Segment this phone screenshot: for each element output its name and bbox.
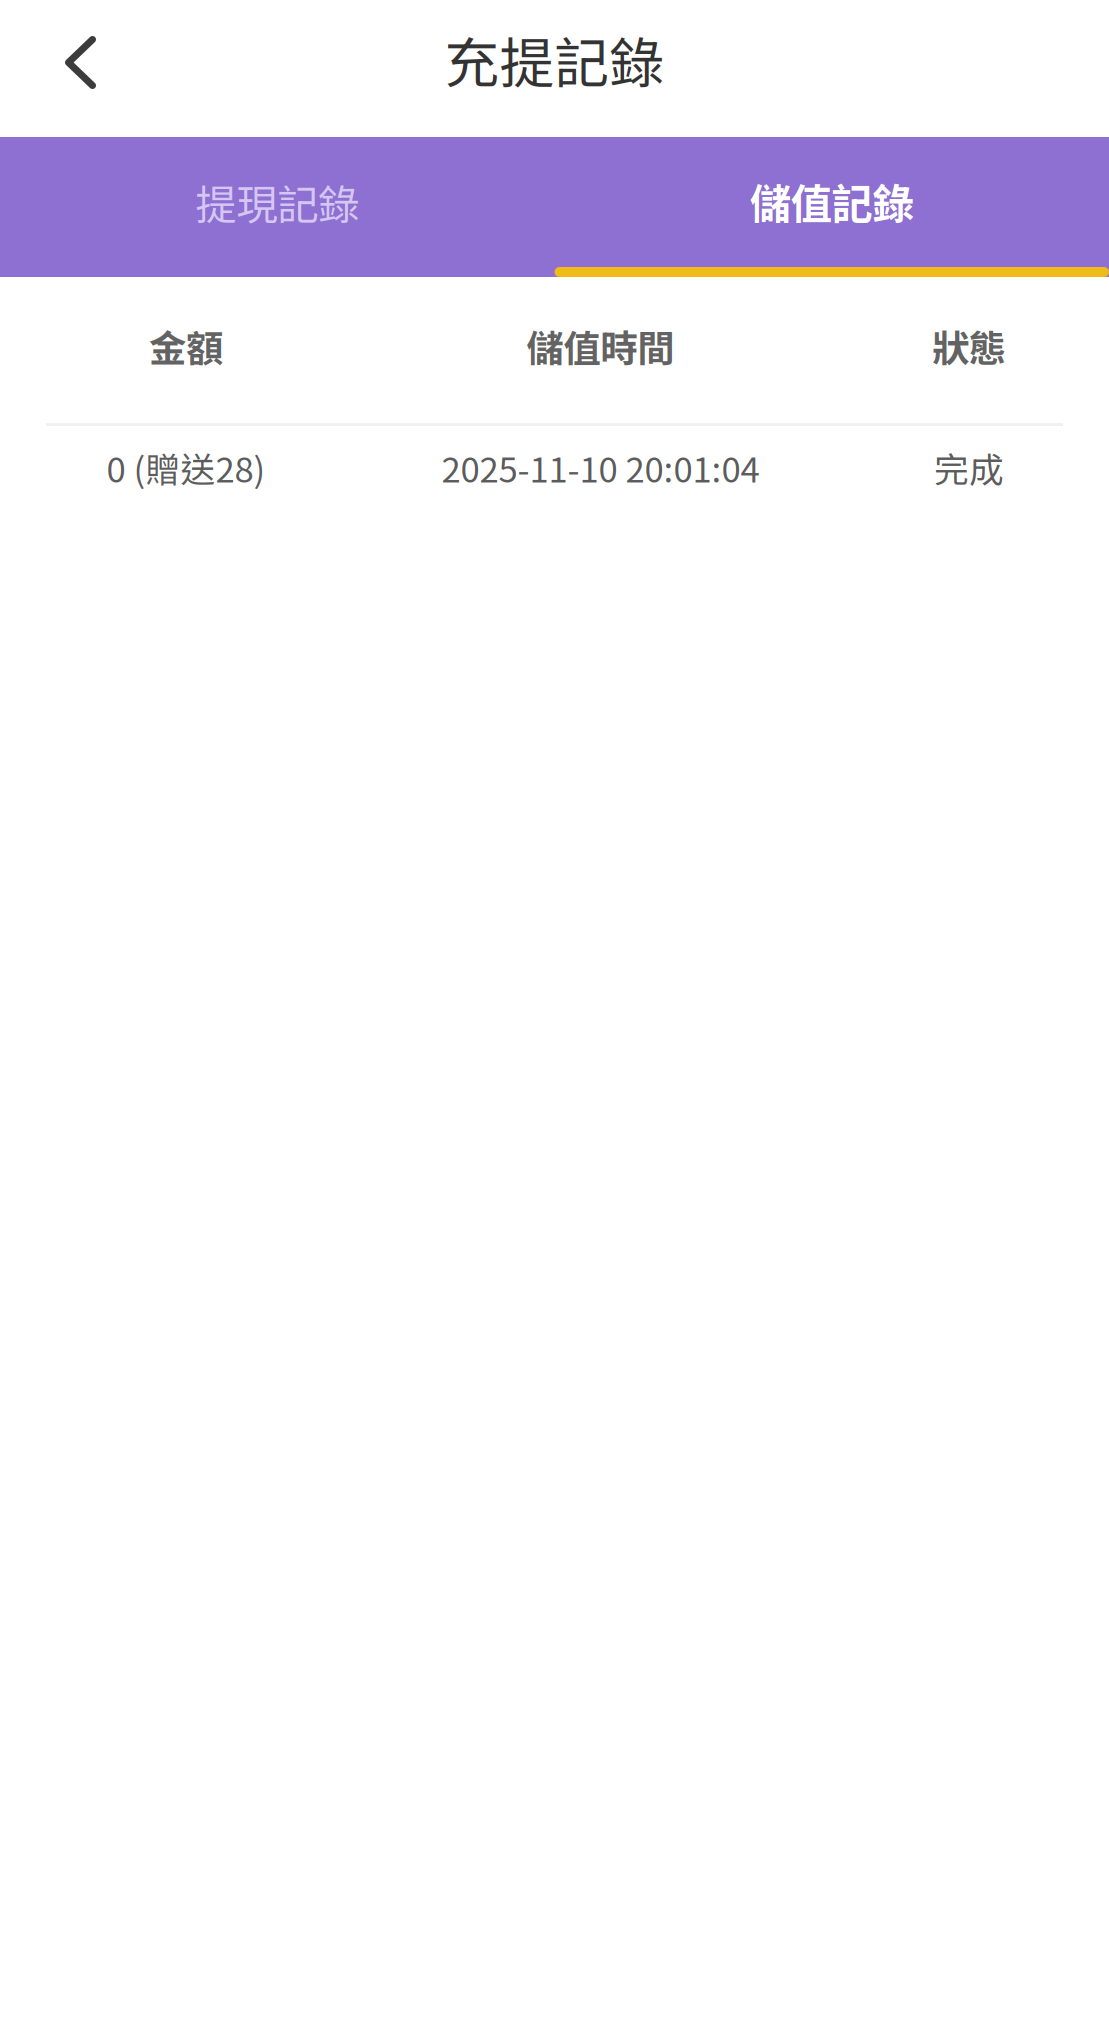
button[interactable]: Back xyxy=(0,0,96,137)
staticText: 完成 xyxy=(934,442,1004,493)
staticText: 儲值時間 xyxy=(526,319,674,373)
staticText: 儲值記錄 xyxy=(750,171,914,231)
staticText: 充提記錄 xyxy=(444,20,664,99)
staticText: 2025-11-10 20:01:04 xyxy=(441,442,759,493)
button[interactable]: 儲值記錄 xyxy=(554,137,1109,277)
staticText: 提現記錄 xyxy=(195,172,359,232)
staticText: 狀態 xyxy=(932,319,1006,373)
staticText: 金額 xyxy=(149,319,223,373)
button[interactable]: 提現記錄 xyxy=(0,137,554,277)
staticText: 0 (贈送28) xyxy=(106,442,265,493)
